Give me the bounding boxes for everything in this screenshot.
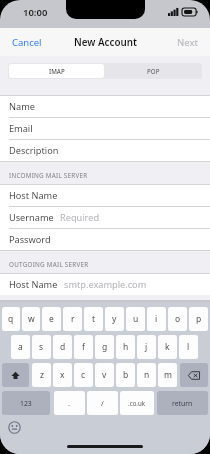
button[interactable]: t <box>84 307 103 331</box>
staticText: q <box>8 313 14 325</box>
staticText: m <box>164 369 172 381</box>
staticText: 123 <box>20 399 32 408</box>
staticText: w <box>28 313 35 325</box>
staticText: smtp.example.com <box>64 278 147 291</box>
button[interactable]: s <box>32 335 51 359</box>
button[interactable]: v <box>95 363 114 387</box>
button[interactable]: b <box>116 363 135 387</box>
staticText: y <box>112 313 117 325</box>
staticText: a <box>18 341 23 353</box>
staticText: e <box>49 313 54 325</box>
button[interactable]: Host Name <box>0 185 210 207</box>
staticText: Next <box>177 36 198 49</box>
button[interactable]: n <box>137 363 156 387</box>
staticText: l <box>187 341 190 353</box>
staticText: OUTGOING MAIL SERVER <box>9 260 89 269</box>
button[interactable]: z <box>32 363 51 387</box>
staticText: Name <box>9 100 35 113</box>
staticText: t <box>92 313 96 325</box>
button[interactable]: o <box>168 307 187 331</box>
button[interactable]: h <box>116 335 135 359</box>
staticText: s <box>39 341 44 353</box>
button[interactable]: x <box>53 363 72 387</box>
button[interactable]: Username <box>0 207 210 229</box>
staticText: Required <box>60 211 100 224</box>
button[interactable]: i <box>147 307 166 331</box>
button[interactable]: j <box>137 335 156 359</box>
staticText: x <box>60 369 65 381</box>
button[interactable]: Backspace <box>180 363 208 387</box>
button[interactable]: IMAP <box>9 64 104 78</box>
staticText: j <box>145 341 148 353</box>
staticText: return <box>172 399 193 408</box>
staticText: Email <box>9 122 33 135</box>
button[interactable]: m <box>158 363 177 387</box>
button[interactable]: a <box>11 335 30 359</box>
button[interactable]: return <box>157 391 208 415</box>
staticText: Host Name <box>9 189 58 202</box>
button[interactable]: r <box>63 307 82 331</box>
staticText: POP <box>147 67 160 75</box>
button[interactable]: Host Name <box>0 274 210 295</box>
staticText: INCOMING MAIL SERVER <box>9 171 88 180</box>
staticText: .co.uk <box>128 399 146 407</box>
button[interactable]: Password <box>0 229 210 250</box>
staticText: h <box>123 341 129 353</box>
staticText: f <box>82 341 85 353</box>
button[interactable]: y <box>105 307 124 331</box>
button[interactable]: . <box>54 391 85 415</box>
staticText: i <box>155 313 158 325</box>
staticText: g <box>102 341 108 353</box>
staticText: / <box>101 398 104 408</box>
button[interactable]: Name <box>0 96 210 118</box>
staticText: IMAP <box>49 67 65 75</box>
button[interactable]: q <box>2 307 20 331</box>
staticText: Username <box>9 211 54 224</box>
button[interactable]: g <box>95 335 114 359</box>
staticText: o <box>175 313 181 325</box>
staticText: n <box>144 369 150 381</box>
button[interactable]: Cancel <box>0 31 54 54</box>
button[interactable]: .co.uk <box>120 391 154 415</box>
button[interactable]: Email <box>0 118 210 140</box>
staticText: Password <box>9 233 51 246</box>
button[interactable]: w <box>22 307 40 331</box>
staticText: k <box>165 341 170 353</box>
button[interactable]: c <box>74 363 93 387</box>
staticText: p <box>196 313 202 325</box>
button[interactable]: e <box>42 307 61 331</box>
button[interactable]: f <box>74 335 93 359</box>
button[interactable]: Description <box>0 140 210 161</box>
button[interactable]: u <box>126 307 145 331</box>
button[interactable]: l <box>179 335 198 359</box>
staticText: New Account <box>74 36 137 49</box>
staticText: u <box>133 313 139 325</box>
staticText: r <box>71 313 75 325</box>
staticText: Description <box>9 144 59 157</box>
staticText: 10:00 <box>23 6 48 19</box>
button[interactable]: p <box>189 307 208 331</box>
staticText: z <box>40 369 44 381</box>
button[interactable]: / <box>87 391 118 415</box>
button[interactable]: Shift <box>2 363 29 387</box>
button[interactable]: d <box>53 335 72 359</box>
button[interactable]: k <box>158 335 177 359</box>
button[interactable]: POP <box>105 63 202 79</box>
staticText: c <box>81 369 86 381</box>
staticText: Cancel <box>12 36 42 49</box>
button[interactable]: Next <box>165 31 210 54</box>
staticText: . <box>68 398 71 408</box>
staticText: d <box>60 341 66 353</box>
staticText: b <box>123 369 129 381</box>
staticText: v <box>102 369 107 381</box>
button[interactable]: 123 <box>2 391 50 415</box>
button[interactable]: Emoji <box>8 421 21 434</box>
staticText: Host Name <box>9 278 58 291</box>
